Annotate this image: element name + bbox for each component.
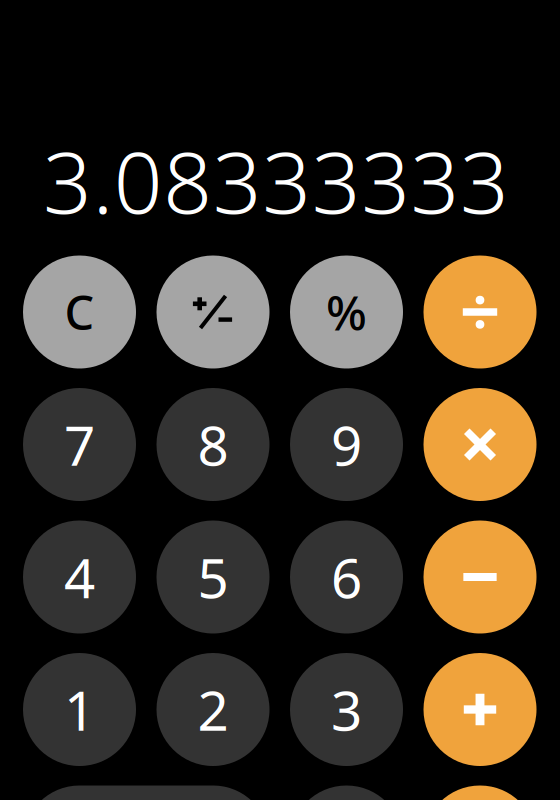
button[interactable]: Divide	[423, 255, 536, 368]
button[interactable]: 1	[23, 653, 136, 766]
staticText: 3	[331, 673, 362, 746]
button[interactable]: 0	[23, 785, 269, 800]
staticText: %	[326, 280, 367, 344]
button[interactable]: Minus	[423, 520, 536, 633]
staticText: 7	[64, 408, 95, 481]
button[interactable]: 5	[156, 520, 269, 633]
button[interactable]: Percent	[290, 255, 403, 368]
button[interactable]: 6	[290, 520, 403, 633]
button[interactable]: 7	[23, 388, 136, 501]
staticText: 1	[64, 673, 95, 746]
staticText: 9	[331, 408, 362, 481]
button[interactable]: 3	[290, 653, 403, 766]
button[interactable]: Plus minus	[156, 255, 269, 368]
button[interactable]: Equals	[423, 785, 536, 800]
button[interactable]: 9	[290, 388, 403, 501]
button[interactable]: Clear	[23, 255, 136, 368]
button[interactable]: 4	[23, 520, 136, 633]
button[interactable]: 2	[156, 653, 269, 766]
button[interactable]: Plus	[423, 653, 536, 766]
button[interactable]: 8	[156, 388, 269, 501]
staticText: C	[64, 281, 94, 343]
staticText: 8	[197, 408, 228, 481]
button[interactable]: Multiply	[423, 388, 536, 501]
staticText: 6	[331, 541, 362, 613]
button[interactable]: Decimal point	[290, 785, 403, 800]
staticText: 4	[64, 541, 95, 613]
staticText: 5	[197, 541, 228, 613]
staticText: 3.08333333	[43, 124, 509, 237]
staticText: 2	[197, 673, 228, 746]
